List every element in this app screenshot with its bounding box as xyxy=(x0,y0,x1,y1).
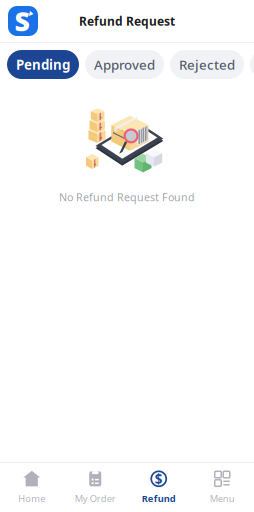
staticText: Refund xyxy=(142,492,176,505)
button[interactable]: App logo xyxy=(8,6,38,36)
staticText: Rejected xyxy=(179,56,235,73)
staticText: No Refund Request Found xyxy=(59,190,195,204)
staticText: Approved xyxy=(94,56,155,73)
button[interactable]: Cancelled xyxy=(250,50,254,79)
button[interactable]: Home xyxy=(0,470,63,505)
staticText: S xyxy=(14,3,29,39)
staticText: $ xyxy=(155,470,163,488)
button[interactable]: Approved xyxy=(85,50,164,79)
button[interactable]: Rejected xyxy=(170,50,244,79)
staticText: My Order xyxy=(75,492,116,505)
button[interactable]: $ xyxy=(127,470,190,505)
staticText: Home xyxy=(18,492,45,505)
button[interactable]: My Order xyxy=(63,470,127,505)
button[interactable]: Menu xyxy=(190,470,254,505)
staticText: Pending xyxy=(16,56,70,73)
button[interactable]: Pending xyxy=(7,50,79,79)
staticText: Menu xyxy=(210,492,235,505)
staticText: Refund Request xyxy=(79,13,175,29)
